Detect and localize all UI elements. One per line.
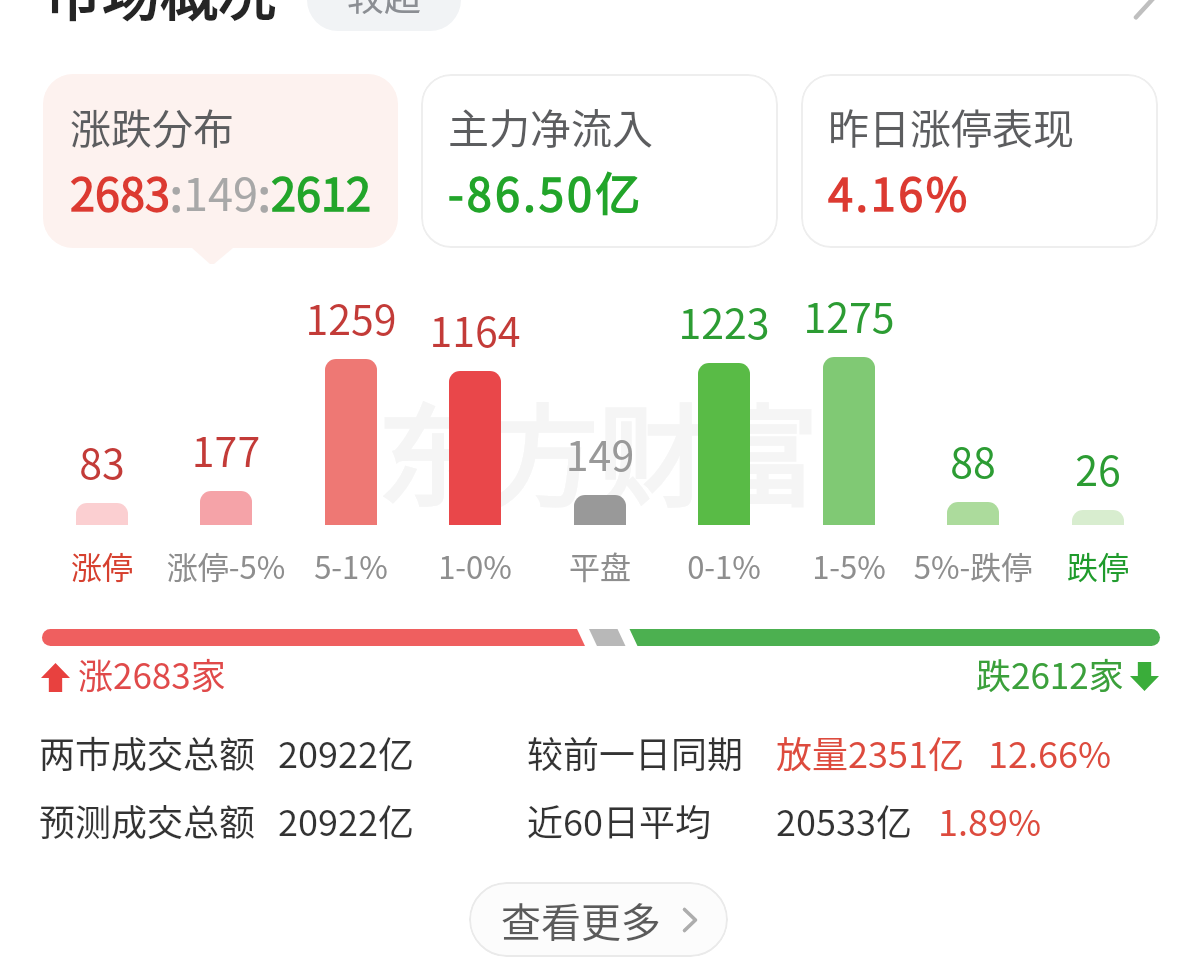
staticText: 1164	[413, 299, 537, 358]
staticText: 较超	[347, 0, 421, 22]
staticText: 1.89%	[938, 794, 1042, 846]
button[interactable]: 涨跌分布	[43, 74, 398, 248]
staticText: 市场概况	[44, 0, 277, 32]
staticText: 1275	[787, 285, 911, 344]
staticText: 主力净流入	[448, 96, 653, 155]
staticText: 149	[538, 423, 662, 482]
staticText: 跌2612家	[976, 648, 1124, 699]
staticText: :	[170, 159, 183, 224]
staticText: 4.16%	[828, 159, 970, 224]
staticText: 88	[911, 430, 1035, 489]
button[interactable]: More	[1124, 0, 1164, 20]
staticText: 近60日平均	[527, 794, 711, 846]
staticText: 较前一日同期	[527, 726, 744, 778]
button[interactable]: 市场概况	[44, 0, 277, 32]
staticText: 涨跌分布	[70, 96, 234, 155]
staticText: 177	[164, 419, 288, 478]
button[interactable]: 主力净流入	[421, 74, 778, 248]
staticText: 2612	[271, 159, 371, 224]
staticText: 12.66%	[988, 726, 1112, 778]
staticText: 1259	[289, 287, 413, 346]
button[interactable]: 查看更多	[469, 882, 728, 957]
staticText: 149	[183, 159, 258, 224]
staticText: 查看更多	[501, 891, 661, 949]
staticText: 两市成交总额	[39, 726, 256, 778]
staticText: 83	[40, 431, 164, 490]
staticText: 涨停	[32, 543, 172, 588]
staticText: 20533亿	[776, 794, 912, 846]
staticText: 1-0%	[405, 543, 545, 588]
button[interactable]: 昨日涨停表现	[801, 74, 1158, 248]
staticText: 20922亿	[278, 794, 414, 846]
staticText: 东方财富	[378, 369, 818, 528]
staticText: 涨停-5%	[156, 543, 296, 588]
staticText: 2683	[70, 159, 170, 224]
staticText: 昨日涨停表现	[828, 96, 1074, 155]
staticText: 20922亿	[278, 726, 414, 778]
staticText: 1-5%	[779, 543, 919, 588]
staticText: 5-1%	[281, 543, 421, 588]
staticText: 1223	[662, 291, 786, 350]
staticText: 0-1%	[654, 543, 794, 588]
staticText: 26	[1036, 438, 1160, 497]
staticText: 5%-跌停	[903, 543, 1043, 588]
staticText: 平盘	[530, 543, 670, 588]
staticText: 放量2351亿	[776, 726, 964, 778]
button[interactable]: 较超	[307, 0, 461, 31]
staticText: 预测成交总额	[39, 794, 256, 846]
staticText: -86.50亿	[448, 159, 644, 224]
staticText: 涨2683家	[78, 648, 226, 699]
staticText: 跌停	[1028, 543, 1168, 588]
staticText: :	[258, 159, 271, 224]
